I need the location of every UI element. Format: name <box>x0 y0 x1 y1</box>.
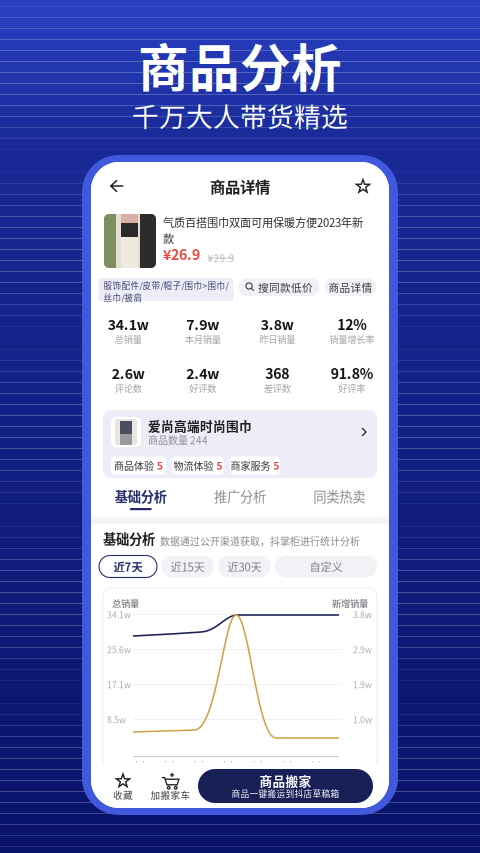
staticText: 收藏 <box>113 787 133 801</box>
button[interactable]: 服饰配件/皮带/帽子/围巾>围巾/丝巾/披肩 <box>98 278 233 301</box>
staticText: ·· <box>310 756 324 766</box>
staticText: ·· <box>133 756 147 766</box>
button[interactable]: 收藏 <box>99 769 147 803</box>
staticText: 91.8% <box>331 363 373 383</box>
staticText: 商品搬家 <box>259 771 311 790</box>
button[interactable]: 商品搬家 <box>198 769 373 803</box>
staticText: 新增销量 <box>332 596 368 610</box>
staticText: 2.6w <box>112 363 145 383</box>
staticText: 商家服务 <box>230 458 270 473</box>
button[interactable]: 自定义 <box>275 555 377 577</box>
staticText: 同类热卖 <box>313 486 365 506</box>
staticText: ·· <box>192 756 206 766</box>
staticText: 近7天 <box>113 558 142 575</box>
staticText: 搜同款低价 <box>258 279 313 295</box>
staticText: 好评数 <box>189 381 216 395</box>
staticText: ¥29.9 <box>207 251 234 265</box>
staticText: 7.9w <box>186 314 219 334</box>
staticText: 好评率 <box>338 381 365 395</box>
staticText: 2.4w <box>186 363 219 383</box>
staticText: 商品一键搬运到抖店草稿箱 <box>231 787 339 800</box>
staticText: ·· <box>280 756 294 766</box>
staticText: 近15天 <box>170 558 204 575</box>
staticText: 17.1w <box>107 678 131 691</box>
staticText: 1.9w <box>353 678 372 691</box>
staticText: 商品体验 <box>114 458 154 473</box>
button[interactable]: 近30天 <box>218 555 271 577</box>
staticText: ·· <box>251 756 265 766</box>
button[interactable]: 基础分析 <box>91 484 190 517</box>
button[interactable]: 同类热卖 <box>290 484 389 517</box>
button[interactable]: 近7天 <box>99 555 157 577</box>
staticText: 34.1w <box>108 314 149 334</box>
button[interactable]: 收藏 <box>346 169 380 203</box>
staticText: 服饰配件/皮带/帽子/围巾>围巾/丝巾/披肩 <box>103 279 228 304</box>
staticText: 3.8w <box>261 314 294 334</box>
staticText: 加搬家车 <box>150 787 190 801</box>
staticText: 千万大人带货精选 <box>132 96 348 134</box>
staticText: 总销量 <box>112 596 139 610</box>
button[interactable]: 搜同款低价 <box>238 278 319 296</box>
button[interactable]: 返回 <box>100 169 134 203</box>
staticText: 基础分析 <box>115 486 167 506</box>
staticText: 销量增长率 <box>329 332 374 346</box>
button[interactable]: 商品详情 <box>324 278 376 296</box>
staticText: 5 <box>273 458 279 473</box>
staticText: 5 <box>157 458 163 473</box>
button[interactable]: 加搬家车 <box>147 769 194 803</box>
staticText: 商品数量 244 <box>148 433 208 447</box>
button[interactable]: 爱尚高端时尚围巾 <box>91 404 389 484</box>
staticText: 商品分析 <box>138 28 342 102</box>
staticText: 本月销量 <box>185 332 221 346</box>
staticText: ·· <box>162 756 176 766</box>
staticText: 8.5w <box>107 713 126 726</box>
staticText: ·· <box>221 756 235 766</box>
staticText: 商品详情 <box>210 175 270 197</box>
staticText: 评论数 <box>115 381 142 395</box>
button[interactable]: 近15天 <box>161 555 214 577</box>
staticText: 25.6w <box>107 643 131 656</box>
staticText: 2.9w <box>353 643 372 656</box>
staticText: 12% <box>337 314 366 334</box>
staticText: 爱尚高端时尚围巾 <box>148 416 252 435</box>
staticText: 基础分析 <box>103 529 155 548</box>
staticText: 34.1w <box>107 608 131 621</box>
staticText: 商品详情 <box>328 279 372 295</box>
staticText: 368 <box>265 363 289 383</box>
staticText: 1.0w <box>353 713 372 726</box>
button[interactable]: 推广分析 <box>190 484 290 517</box>
staticText: 气质百搭围巾双面可用保暖方便2023年新款 <box>163 214 363 246</box>
staticText: 总销量 <box>115 332 142 346</box>
staticText: 5 <box>216 458 222 473</box>
staticText: 物流体验 <box>173 458 213 473</box>
staticText: ¥26.9 <box>163 244 200 264</box>
staticText: 3.8w <box>353 608 372 621</box>
staticText: 差评数 <box>264 381 291 395</box>
staticText: 数据通过公开渠道获取，抖掌柜进行统计分析 <box>160 534 360 548</box>
staticText: 近30天 <box>227 558 261 575</box>
staticText: 昨日销量 <box>259 332 295 346</box>
staticText: 推广分析 <box>214 486 266 506</box>
staticText: 自定义 <box>309 558 342 575</box>
